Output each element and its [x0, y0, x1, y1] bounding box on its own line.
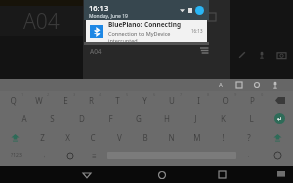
staticText: Title [90, 30, 108, 42]
button[interactable]: Q [0, 91, 26, 109]
staticText: 7 [180, 92, 183, 97]
button[interactable]: Clipboard [233, 79, 245, 91]
staticText: 8 [207, 92, 210, 97]
button[interactable]: Share [183, 11, 194, 22]
button[interactable]: D [67, 109, 96, 127]
staticText: 2 [47, 92, 50, 97]
button[interactable]: K [209, 109, 237, 127]
button[interactable]: BluePiano: Connecting [86, 20, 207, 42]
button[interactable]: T [104, 91, 131, 109]
button[interactable]: U [158, 91, 185, 109]
button[interactable]: Z [30, 127, 55, 147]
staticText: 16:13 [89, 3, 109, 13]
staticText: D [79, 113, 85, 124]
staticText: E [63, 95, 68, 106]
staticText: 9 [234, 92, 237, 97]
button[interactable]: R [78, 91, 104, 109]
staticText: Connection to MyDevice interrupted. [108, 30, 191, 42]
button[interactable]: Keyboard [277, 171, 285, 179]
button[interactable]: G [125, 109, 153, 127]
staticText: T [115, 95, 120, 106]
staticText: 0 [261, 92, 264, 97]
staticText: Q [10, 95, 17, 106]
button[interactable]: N [158, 127, 184, 147]
staticText: . [248, 152, 250, 159]
button[interactable]: C [80, 127, 106, 147]
staticText: L [249, 113, 254, 124]
staticText: N [168, 132, 175, 143]
staticText: R [89, 95, 94, 106]
button[interactable]: Back [42, 166, 132, 183]
staticText: ? [247, 132, 251, 143]
button[interactable]: H [153, 109, 181, 127]
staticText: U [169, 95, 175, 106]
button[interactable]: Camera [274, 48, 288, 62]
button[interactable]: M [184, 127, 210, 147]
staticText: G [136, 113, 142, 124]
button[interactable]: X [55, 127, 80, 147]
button[interactable]: Y [131, 91, 158, 109]
staticText: ☰ [92, 153, 97, 159]
staticText: H [164, 113, 170, 124]
button[interactable]: S [38, 109, 67, 127]
button[interactable]: Enter [265, 109, 293, 127]
staticText: Z [40, 132, 45, 143]
staticText: 4 [99, 92, 102, 97]
staticText: V [117, 132, 122, 143]
button[interactable]: Shift [0, 127, 30, 147]
staticText: 6 [153, 92, 156, 97]
button[interactable]: List [197, 44, 211, 58]
staticText: C [90, 132, 96, 143]
button[interactable]: O [212, 91, 239, 109]
button[interactable]: More [206, 11, 217, 22]
button[interactable]: Checkbox [89, 164, 98, 173]
button[interactable]: P [239, 91, 266, 109]
button[interactable]: L [237, 109, 265, 127]
button[interactable]: W [26, 91, 52, 109]
button[interactable]: I [185, 91, 212, 109]
button[interactable]: A [9, 109, 38, 127]
staticText: Y [142, 95, 147, 106]
button[interactable]: J [181, 109, 209, 127]
button[interactable]: E [52, 91, 78, 109]
button[interactable]: B [132, 127, 158, 147]
button[interactable]: Account [195, 6, 204, 15]
staticText: O [222, 95, 229, 106]
staticText: A [21, 113, 27, 124]
staticText: 16:13 [191, 28, 203, 34]
button[interactable]: Menu [215, 164, 224, 173]
button[interactable]: Translate [215, 79, 227, 91]
button[interactable]: ?123 [0, 147, 32, 164]
button[interactable]: Backspace [266, 91, 293, 109]
button[interactable]: V [106, 127, 132, 147]
staticText: W [35, 95, 43, 106]
button[interactable]: Back [88, 3, 104, 19]
button[interactable]: Language [57, 147, 82, 164]
button[interactable]: Shift [262, 127, 293, 147]
button[interactable]: Recent apps [192, 166, 252, 183]
staticText: X [65, 132, 70, 143]
staticText: M [193, 132, 201, 143]
button[interactable]: ? [236, 127, 262, 147]
button[interactable]: Edit [235, 48, 249, 62]
staticText: , [44, 152, 46, 159]
staticText: F [108, 113, 113, 124]
staticText: A04 [90, 47, 102, 56]
staticText: P [250, 95, 255, 106]
staticText: ! [222, 132, 225, 143]
button[interactable]: Voice [255, 48, 269, 62]
staticText: Cancel / Edit [140, 165, 172, 172]
staticText: Monday, June 19 [89, 13, 128, 20]
button[interactable]: Settings [251, 79, 263, 91]
button[interactable]: Voice [269, 79, 281, 91]
staticText: ?123 [11, 152, 22, 159]
staticText: ↵ [277, 115, 283, 122]
button[interactable]: Home [132, 166, 192, 183]
button[interactable]: F [96, 109, 125, 127]
button[interactable]: Emoji [261, 147, 293, 164]
